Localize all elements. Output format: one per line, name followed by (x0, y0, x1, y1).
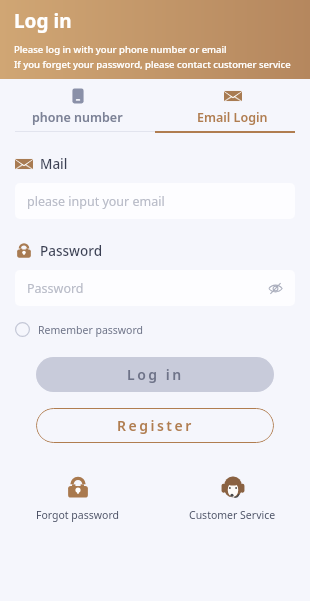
staticText: please input your email (27, 193, 165, 210)
staticText: Register (117, 416, 194, 435)
button[interactable]: Log in (36, 357, 274, 392)
button[interactable]: phone number (0, 83, 155, 131)
button[interactable]: Forgot password (32, 471, 123, 526)
staticText: Customer Service (189, 508, 276, 522)
staticText: phone number (32, 109, 123, 126)
staticText: Log in (14, 8, 72, 34)
staticText: Remember password (38, 323, 144, 337)
staticText: Password (40, 242, 103, 260)
staticText: If you forget your password, please cont… (14, 58, 291, 71)
button[interactable]: Customer Service (185, 471, 280, 526)
staticText: Log in (127, 365, 184, 384)
staticText: Password (27, 280, 84, 297)
button[interactable]: Email Login (155, 83, 310, 131)
staticText: Please log in with your phone number or … (14, 43, 227, 56)
staticText: Mail (40, 155, 68, 173)
button[interactable]: Remember password (15, 322, 144, 337)
staticText: Email Login (197, 109, 268, 126)
button[interactable]: please input your email (15, 183, 295, 219)
button[interactable]: Show password (265, 278, 285, 298)
button[interactable]: Password (15, 270, 295, 306)
button[interactable]: Register (36, 408, 274, 443)
staticText: Forgot password (36, 508, 119, 522)
